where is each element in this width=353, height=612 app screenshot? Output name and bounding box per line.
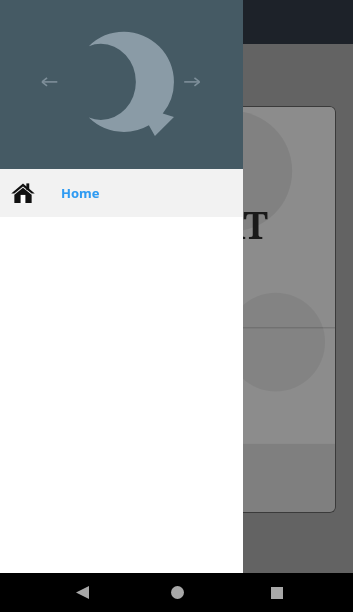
other: App logo bbox=[24, 28, 204, 138]
button[interactable]: Home bbox=[0, 169, 243, 217]
staticText: Home bbox=[61, 184, 100, 202]
button[interactable]: Recent apps bbox=[257, 573, 297, 612]
button[interactable]: Home bbox=[157, 573, 197, 612]
button[interactable]: Back bbox=[62, 573, 102, 612]
staticText: EAT bbox=[192, 198, 268, 250]
